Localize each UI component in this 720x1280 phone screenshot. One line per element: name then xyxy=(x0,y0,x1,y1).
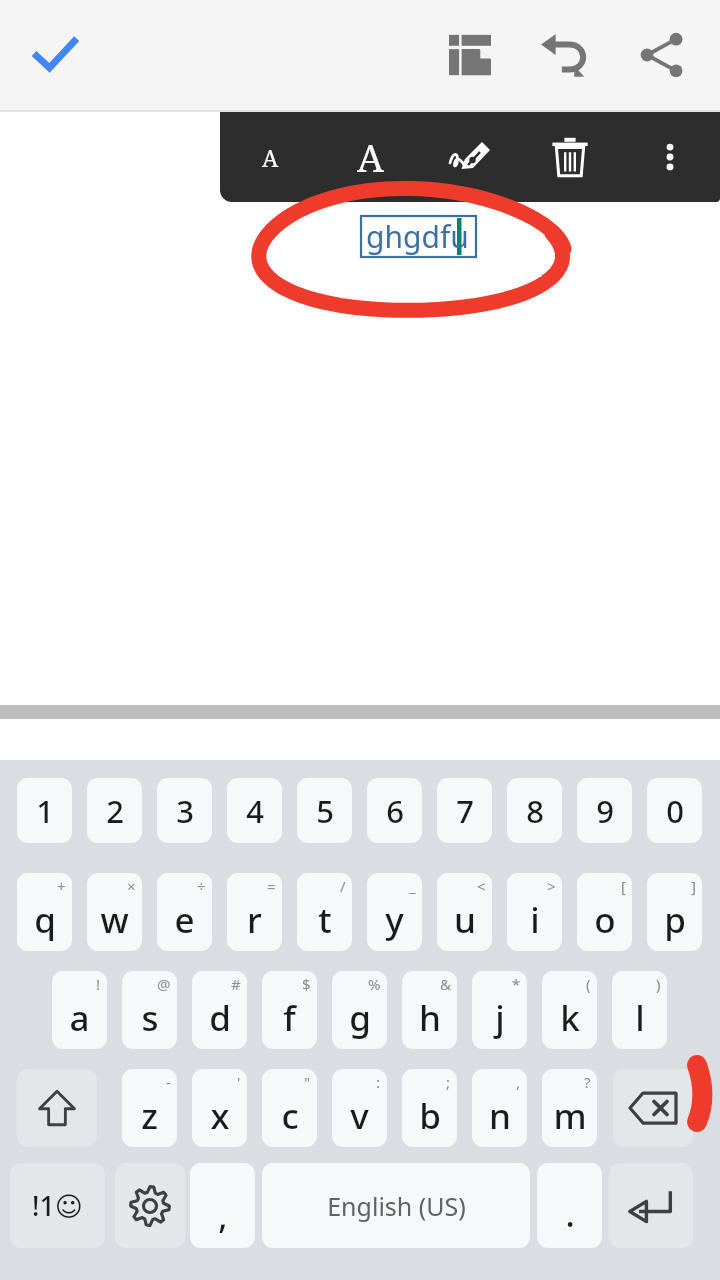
button[interactable]: Backspace xyxy=(613,1069,693,1147)
staticText: r xyxy=(247,896,262,944)
staticText: u xyxy=(454,896,476,944)
button[interactable]: - xyxy=(122,1069,177,1147)
staticText: ÷ xyxy=(197,876,206,896)
button[interactable]: Undo xyxy=(518,0,614,110)
staticText: y xyxy=(385,896,404,944)
staticText: - xyxy=(166,1072,171,1092)
button[interactable]: # xyxy=(192,971,247,1049)
staticText: + xyxy=(57,876,66,896)
button[interactable]: Space xyxy=(262,1163,530,1248)
button[interactable]: $ xyxy=(262,971,317,1049)
button[interactable]: 8 xyxy=(507,778,562,843)
staticText: ( xyxy=(586,974,591,994)
staticText: q xyxy=(34,896,56,944)
button[interactable]: Delete xyxy=(520,112,620,202)
button[interactable]: , xyxy=(190,1163,255,1248)
button[interactable]: < xyxy=(437,873,492,951)
staticText: j xyxy=(495,994,505,1042)
button[interactable]: × xyxy=(87,873,142,951)
staticText: ] xyxy=(691,876,696,896)
staticText: b xyxy=(419,1092,441,1140)
staticText: s xyxy=(141,994,159,1042)
staticText: ' xyxy=(237,1072,241,1092)
button[interactable]: 4 xyxy=(227,778,282,843)
button[interactable]: Small text xyxy=(220,112,320,202)
button[interactable]: @ xyxy=(122,971,177,1049)
staticText: 4 xyxy=(246,790,264,832)
staticText: 9 xyxy=(596,790,614,832)
button[interactable]: ! xyxy=(52,971,107,1049)
staticText: ghgdfu xyxy=(366,216,469,257)
button[interactable]: Done xyxy=(0,0,110,110)
staticText: ! xyxy=(96,974,101,994)
staticText: : xyxy=(376,1072,381,1092)
button[interactable]: 9 xyxy=(577,778,632,843)
staticText: English (US) xyxy=(327,1189,466,1223)
staticText: p xyxy=(664,896,686,944)
button[interactable]: [ xyxy=(577,873,632,951)
staticText: & xyxy=(440,974,451,994)
staticText: g xyxy=(349,994,371,1042)
staticText: 7 xyxy=(456,790,474,832)
button[interactable]: 5 xyxy=(297,778,352,843)
button[interactable]: = xyxy=(227,873,282,951)
button[interactable]: 3 xyxy=(157,778,212,843)
button[interactable]: 0 xyxy=(647,778,702,843)
staticText: x xyxy=(210,1092,230,1140)
button[interactable]: % xyxy=(332,971,387,1049)
button[interactable]: : xyxy=(332,1069,387,1147)
button[interactable]: * xyxy=(472,971,527,1049)
button[interactable]: ? xyxy=(542,1069,597,1147)
staticText: , xyxy=(516,1072,521,1092)
staticText: 8 xyxy=(526,790,544,832)
button[interactable]: Symbols xyxy=(10,1163,105,1248)
button[interactable]: ] xyxy=(647,873,702,951)
staticText: * xyxy=(512,974,521,994)
button[interactable]: 2 xyxy=(87,778,142,843)
button[interactable]: ' xyxy=(192,1069,247,1147)
button[interactable]: Large text xyxy=(320,112,420,202)
staticText: d xyxy=(209,994,231,1042)
staticText: o xyxy=(594,896,616,944)
button[interactable]: " xyxy=(262,1069,317,1147)
button[interactable]: ) xyxy=(612,971,667,1049)
button[interactable]: & xyxy=(402,971,457,1049)
staticText: h xyxy=(419,994,441,1042)
button[interactable]: Shift xyxy=(17,1069,97,1147)
button[interactable]: / xyxy=(297,873,352,951)
button[interactable]: _ xyxy=(367,873,422,951)
button[interactable]: + xyxy=(17,873,72,951)
button[interactable]: ÷ xyxy=(157,873,212,951)
button[interactable]: . xyxy=(537,1163,602,1248)
button[interactable]: ( xyxy=(542,971,597,1049)
staticText: [ xyxy=(621,876,626,896)
button[interactable]: ghgdfu xyxy=(361,216,476,257)
button[interactable]: ; xyxy=(402,1069,457,1147)
button[interactable]: 6 xyxy=(367,778,422,843)
staticText: A xyxy=(262,142,279,173)
staticText: / xyxy=(340,876,346,896)
staticText: @ xyxy=(157,974,171,994)
button[interactable]: Enter xyxy=(609,1163,693,1248)
button[interactable]: > xyxy=(507,873,562,951)
button[interactable]: Share xyxy=(614,0,710,110)
button[interactable]: 7 xyxy=(437,778,492,843)
button[interactable]: Settings xyxy=(115,1163,185,1248)
button[interactable]: , xyxy=(472,1069,527,1147)
staticText: n xyxy=(489,1092,511,1140)
button[interactable]: More options xyxy=(620,112,720,202)
staticText: $ xyxy=(302,974,311,994)
staticText: A xyxy=(357,131,384,183)
staticText: ) xyxy=(656,974,661,994)
staticText: " xyxy=(304,1072,311,1092)
staticText: ; xyxy=(446,1072,451,1092)
staticText: > xyxy=(547,876,556,896)
button[interactable]: 1 xyxy=(17,778,72,843)
staticText: 1 xyxy=(36,790,54,832)
staticText: w xyxy=(100,896,129,944)
button[interactable]: Insert xyxy=(422,0,518,110)
button[interactable]: Signature xyxy=(420,112,520,202)
staticText: m xyxy=(553,1092,587,1140)
staticText: !1☺ xyxy=(32,1187,83,1224)
staticText: a xyxy=(69,994,90,1042)
